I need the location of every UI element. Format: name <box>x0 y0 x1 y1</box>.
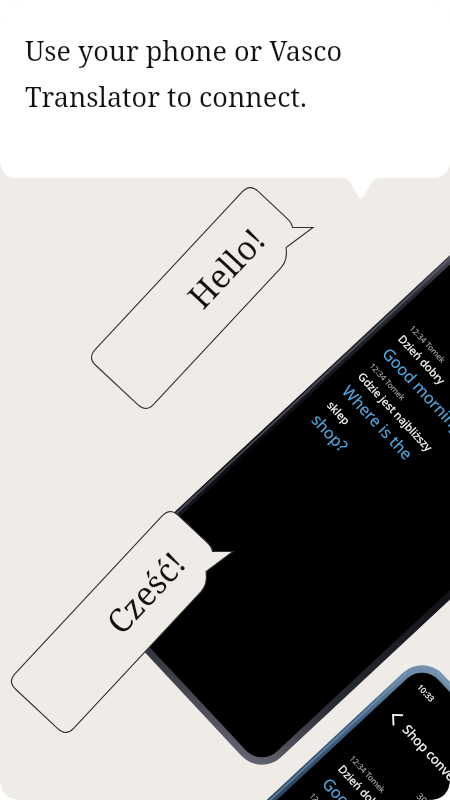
button[interactable]: Use your phone or Vasco Translator to co… <box>0 0 450 800</box>
